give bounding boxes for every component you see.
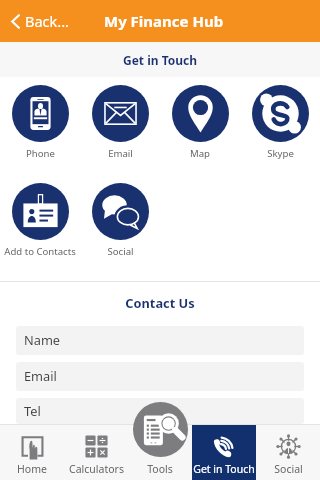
button[interactable]: Get in Touch	[192, 424, 256, 480]
staticText: Map	[190, 147, 210, 160]
button[interactable]: Social	[80, 183, 160, 258]
button[interactable]: Skype	[240, 85, 320, 160]
button[interactable]: Tools	[133, 402, 188, 457]
staticText: Skype	[267, 147, 294, 160]
staticText: Email	[108, 147, 133, 160]
button[interactable]: Back...	[8, 6, 72, 36]
staticText: Social	[107, 245, 134, 258]
staticText: Calculators	[69, 462, 124, 476]
staticText: Add to Contacts	[4, 245, 76, 258]
button[interactable]: Add to Contacts	[0, 183, 80, 258]
staticText: Back...	[25, 11, 69, 31]
button[interactable]: Map	[160, 85, 240, 160]
button[interactable]: Calculators	[64, 424, 128, 480]
staticText: Get in Touch	[193, 462, 255, 476]
button[interactable]: Email	[16, 362, 304, 391]
staticText: Email	[24, 367, 57, 384]
staticText: My Finance Hub	[104, 11, 224, 31]
button[interactable]: Tel	[16, 398, 304, 424]
button[interactable]: Tools	[128, 424, 192, 480]
staticText: Name	[24, 331, 61, 348]
staticText: Tools	[147, 462, 173, 476]
staticText: Get in Touch	[123, 52, 198, 68]
button[interactable]: Phone	[0, 85, 80, 160]
button[interactable]: Name	[16, 326, 304, 355]
button[interactable]: Social	[256, 424, 320, 480]
staticText: Social	[274, 462, 303, 476]
button[interactable]: Email	[80, 85, 160, 160]
staticText: Tel	[24, 402, 41, 419]
staticText: Contact Us	[0, 294, 320, 311]
staticText: Phone	[26, 147, 55, 160]
button[interactable]: Home	[0, 424, 64, 480]
staticText: Home	[17, 462, 47, 476]
